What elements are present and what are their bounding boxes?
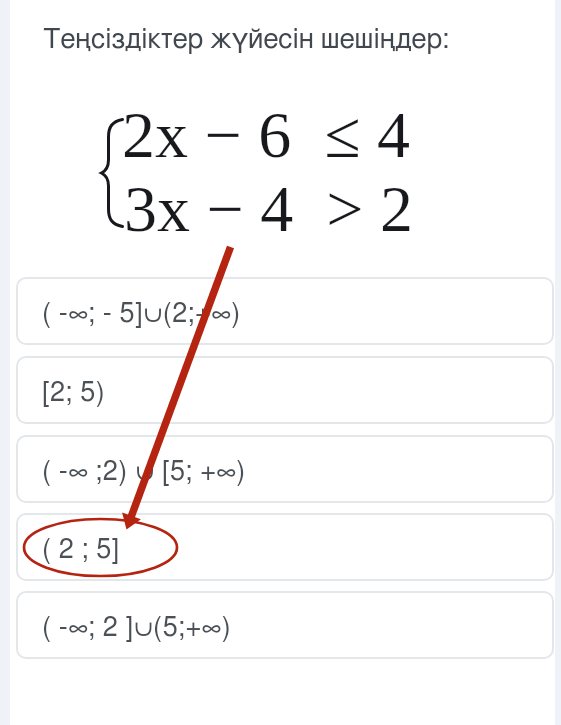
staticText: 2x − 6 ≤ 4 <box>122 98 410 171</box>
button[interactable]: ( -∞; - 5]∪(2;+∞) <box>16 277 554 345</box>
staticText: Теңсіздіктер жүйесін шешіңдер: <box>43 26 450 54</box>
staticText: 3x − 4 > 2 <box>124 172 413 245</box>
button[interactable]: ( -∞ ;2) ∪ [5; +∞) <box>16 435 554 503</box>
button[interactable]: ( 2 ; 5] <box>16 513 554 581</box>
button[interactable]: ( -∞; 2 ]∪(5;+∞) <box>16 591 554 659</box>
staticText: ( -∞ ;2) ∪ [5; +∞) <box>42 458 246 485</box>
staticText: [2; 5) <box>42 379 106 406</box>
staticText: ( 2 ; 5] <box>42 536 120 563</box>
staticText: ( -∞; 2 ]∪(5;+∞) <box>42 614 232 641</box>
staticText: ( -∞; - 5]∪(2;+∞) <box>42 300 241 327</box>
button[interactable]: [2; 5) <box>16 356 554 424</box>
